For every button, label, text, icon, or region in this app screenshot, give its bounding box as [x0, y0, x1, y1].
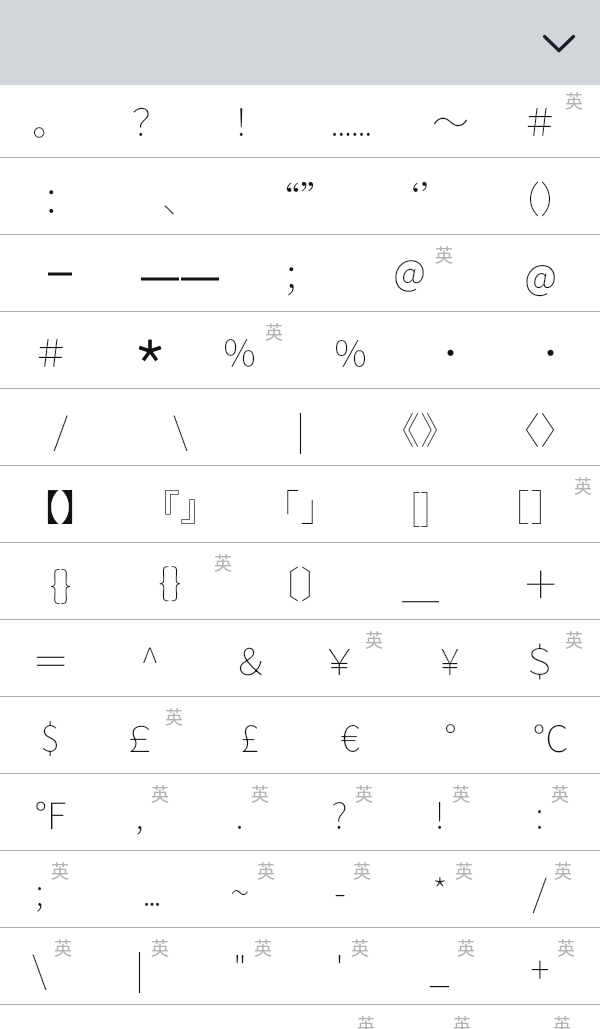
button[interactable]: ＄: [500, 620, 600, 697]
button[interactable]: ；: [240, 235, 360, 312]
button[interactable]: +: [500, 928, 600, 1005]
button[interactable]: ": [200, 928, 300, 1005]
staticText: €: [340, 709, 360, 763]
button[interactable]: ＃: [0, 312, 100, 389]
button[interactable]: ￥: [300, 620, 400, 697]
button[interactable]: “”: [240, 158, 360, 235]
button[interactable]: ℃: [500, 697, 600, 774]
button[interactable]: :: [500, 774, 600, 851]
staticText: £: [240, 709, 260, 763]
button[interactable]: ~: [200, 851, 300, 928]
button[interactable]: •: [500, 312, 600, 389]
button[interactable]: |: [240, 389, 360, 466]
button[interactable]: .: [200, 774, 300, 851]
button[interactable]: {}: [0, 543, 120, 620]
button[interactable]: 《》: [360, 389, 480, 466]
staticText: $: [40, 709, 60, 763]
staticText: ......: [330, 93, 371, 147]
button[interactable]: ': [300, 928, 400, 1005]
staticText: ": [233, 940, 247, 994]
staticText: 英: [351, 934, 369, 960]
button[interactable]: ＝: [0, 620, 100, 697]
button[interactable]: ＿: [360, 543, 480, 620]
button[interactable]: 、: [120, 158, 240, 235]
button[interactable]: ...: [100, 851, 200, 928]
button[interactable]: ℉: [0, 774, 100, 851]
staticText: -: [334, 863, 346, 917]
button[interactable]: ～: [400, 81, 500, 158]
button[interactable]: ［］: [480, 466, 600, 543]
staticText: :: [535, 786, 544, 840]
button[interactable]: ......: [300, 81, 400, 158]
button[interactable]: [120, 235, 240, 312]
button[interactable]: 【】: [0, 466, 120, 543]
button[interactable]: 『』: [120, 466, 240, 543]
button[interactable]: ;: [0, 851, 100, 928]
button[interactable]: ·: [400, 312, 500, 389]
button[interactable]: ：: [0, 158, 120, 235]
staticText: []: [409, 478, 432, 532]
button[interactable]: *: [400, 851, 500, 928]
button[interactable]: [100, 312, 200, 389]
button[interactable]: ＠: [360, 235, 480, 312]
staticText: ?: [331, 786, 348, 840]
button[interactable]: ｛｝: [120, 543, 240, 620]
button[interactable]: ？: [100, 81, 200, 158]
button[interactable]: ¥: [400, 620, 500, 697]
button[interactable]: £: [200, 697, 300, 774]
staticText: ': [335, 940, 344, 994]
staticText: 英: [365, 626, 383, 652]
button[interactable]: \: [0, 928, 100, 1005]
button[interactable]: /: [500, 851, 600, 928]
button[interactable]: 〈〉: [480, 389, 600, 466]
staticText: +: [530, 940, 550, 994]
button[interactable]: ￡: [100, 697, 200, 774]
staticText: 英: [265, 318, 283, 344]
staticText: \: [32, 940, 47, 994]
button[interactable]: |: [100, 928, 200, 1005]
button[interactable]: （）: [480, 158, 600, 235]
button[interactable]: []: [360, 466, 480, 543]
button[interactable]: ＆: [200, 620, 300, 697]
staticText: 英: [455, 857, 473, 883]
button[interactable]: €: [300, 697, 400, 774]
button[interactable]: 。: [0, 81, 100, 158]
button[interactable]: _: [400, 928, 500, 1005]
staticText: 英: [353, 857, 371, 883]
button[interactable]: \: [120, 389, 240, 466]
button[interactable]: ,: [100, 774, 200, 851]
button[interactable]: -: [300, 851, 400, 928]
button[interactable]: /: [0, 389, 120, 466]
button[interactable]: ＋: [480, 543, 600, 620]
button[interactable]: ?: [300, 774, 400, 851]
button[interactable]: ＃: [500, 81, 600, 158]
button[interactable]: %: [300, 312, 400, 389]
button[interactable]: [0, 235, 120, 312]
button[interactable]: >: [300, 1005, 400, 1029]
button[interactable]: ％: [200, 312, 300, 389]
staticText: •: [532, 324, 569, 378]
staticText: %: [334, 324, 367, 378]
button[interactable]: ^: [100, 620, 200, 697]
staticText: ｛｝: [133, 555, 207, 609]
staticText: 『』: [143, 478, 217, 532]
button[interactable]: Hide keyboard: [530, 14, 588, 72]
button[interactable]: }: [500, 1005, 600, 1029]
button[interactable]: °: [400, 697, 500, 774]
button[interactable]: $: [0, 697, 100, 774]
button[interactable]: {: [400, 1005, 500, 1029]
button[interactable]: !: [400, 774, 500, 851]
button[interactable]: @: [480, 235, 600, 312]
staticText: ！: [232, 93, 269, 147]
button[interactable]: ！: [200, 81, 300, 158]
button[interactable]: ‘’: [360, 158, 480, 235]
button[interactable]: 「」: [240, 466, 360, 543]
staticText: 【】: [23, 478, 97, 532]
button[interactable]: 〔〕: [240, 543, 360, 620]
